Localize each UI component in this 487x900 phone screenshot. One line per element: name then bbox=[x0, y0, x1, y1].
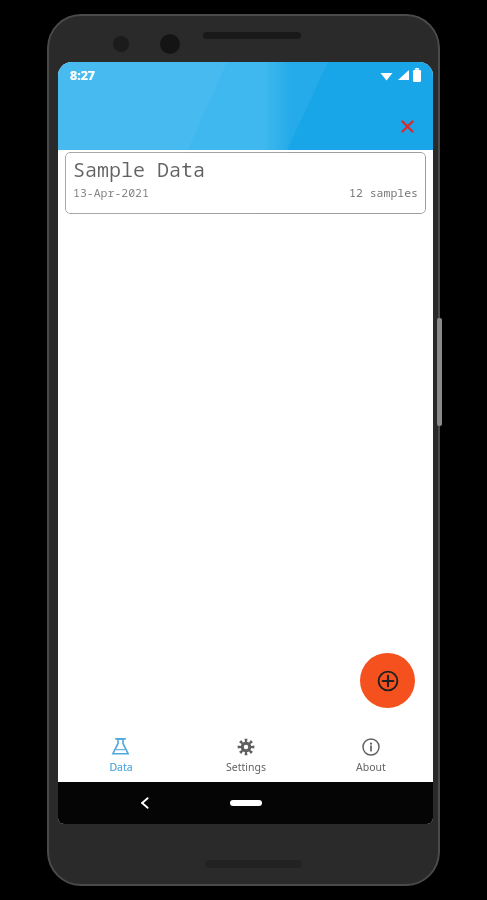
button[interactable]: Close bbox=[389, 108, 425, 144]
staticText: Data bbox=[109, 760, 133, 774]
button[interactable]: Data bbox=[58, 728, 183, 782]
staticText: 12 samples bbox=[349, 185, 418, 201]
button[interactable]: Back bbox=[128, 786, 162, 820]
staticText: Sample Data bbox=[73, 156, 205, 183]
staticText: Settings bbox=[226, 760, 266, 774]
button[interactable]: Settings bbox=[183, 728, 308, 782]
staticText: 13-Apr-2021 bbox=[73, 185, 149, 201]
button[interactable]: About bbox=[308, 728, 433, 782]
button[interactable]: Add sample bbox=[360, 653, 415, 708]
staticText: 8:27 bbox=[70, 67, 95, 84]
button[interactable]: Home bbox=[230, 800, 262, 806]
staticText: About bbox=[356, 760, 386, 774]
button[interactable]: Sample Data bbox=[65, 152, 426, 214]
